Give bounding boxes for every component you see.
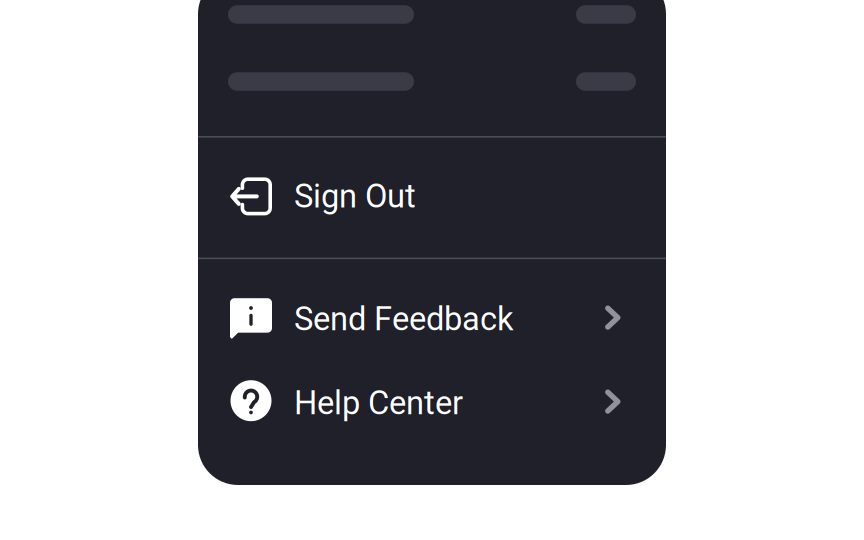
staticText: Send Feedback <box>294 300 514 338</box>
button[interactable]: Help Center <box>198 361 666 445</box>
button[interactable]: Send Feedback <box>198 277 666 361</box>
button[interactable]: Sign Out <box>198 138 666 258</box>
staticText: Help Center <box>294 384 463 422</box>
staticText: Sign Out <box>294 177 416 216</box>
